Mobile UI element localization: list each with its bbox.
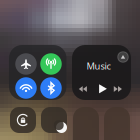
button[interactable]: Cellular Data	[40, 53, 62, 75]
button[interactable]: AirPlay	[117, 51, 129, 63]
button[interactable]: Next	[113, 85, 122, 92]
button[interactable]: Rotation Lock	[10, 107, 36, 133]
staticText: Music	[86, 60, 110, 72]
button[interactable]: Bluetooth	[40, 77, 62, 99]
button[interactable]: Wi-Fi	[15, 77, 37, 99]
button[interactable]: Airplane Mode	[15, 53, 37, 75]
button[interactable]: Previous	[78, 85, 87, 92]
button[interactable]: Focus	[41, 107, 67, 133]
button[interactable]: Play	[98, 84, 107, 94]
